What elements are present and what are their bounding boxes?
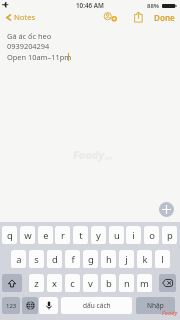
staticText: p — [167, 229, 173, 242]
staticText: y — [96, 229, 101, 242]
button[interactable]: w — [20, 226, 35, 244]
staticText: r — [61, 229, 65, 242]
button[interactable]: t — [73, 226, 88, 244]
staticText: t — [79, 229, 83, 242]
button[interactable]: g — [83, 250, 98, 268]
staticText: w — [24, 229, 32, 242]
staticText: g — [88, 253, 94, 266]
button[interactable]: x — [47, 274, 62, 292]
button[interactable]: m — [137, 274, 152, 292]
button[interactable]: Notes — [0, 9, 40, 26]
staticText: 10:46 AM — [76, 1, 104, 10]
staticText: l — [161, 253, 164, 266]
button[interactable]: o — [144, 226, 159, 244]
staticText: j — [125, 253, 128, 266]
staticText: u — [114, 229, 120, 242]
staticText: Open 10am–11pm — [7, 52, 72, 62]
button[interactable]: Add people — [102, 10, 119, 24]
button[interactable]: j — [119, 250, 134, 268]
button[interactable]: h — [101, 250, 116, 268]
button[interactable]: Add attachment — [159, 202, 174, 217]
button[interactable]: b — [101, 274, 116, 292]
button[interactable]: v — [83, 274, 98, 292]
staticText: n — [124, 277, 130, 290]
staticText: o — [149, 229, 155, 242]
button[interactable]: u — [109, 226, 124, 244]
staticText: Foody — [162, 309, 178, 316]
button[interactable]: l — [155, 250, 170, 268]
button[interactable]: d — [47, 250, 62, 268]
staticText: s — [34, 253, 39, 266]
button[interactable]: Shift — [2, 274, 22, 292]
button[interactable]: Delete — [159, 274, 176, 292]
staticText: k — [142, 253, 148, 266]
button[interactable]: z — [29, 274, 44, 292]
button[interactable]: p — [162, 226, 177, 244]
button[interactable]: e — [38, 226, 53, 244]
staticText: m — [140, 277, 149, 290]
button[interactable]: Change keyboard — [22, 297, 38, 314]
button[interactable]: s — [29, 250, 44, 268]
staticText: z — [34, 277, 39, 290]
staticText: dấu cách — [83, 301, 111, 310]
button[interactable]: n — [119, 274, 134, 292]
button[interactable]: c — [65, 274, 80, 292]
button[interactable]: q — [2, 226, 17, 244]
staticText: c — [70, 277, 75, 290]
staticText: f — [71, 253, 75, 266]
staticText: i — [132, 229, 135, 242]
staticText: q — [7, 229, 13, 242]
button[interactable]: r — [55, 226, 70, 244]
button[interactable]: Nhập — [136, 297, 175, 314]
staticText: h — [106, 253, 112, 266]
staticText: Notes — [14, 12, 36, 22]
button[interactable]: Dictate — [39, 297, 58, 314]
button[interactable]: i — [126, 226, 141, 244]
staticText: a — [16, 253, 22, 266]
staticText: Gà ác ốc heo — [7, 31, 52, 41]
staticText: Nhập — [147, 301, 164, 310]
staticText: Foody — [73, 147, 104, 162]
staticText: e — [43, 229, 49, 242]
button[interactable]: f — [65, 250, 80, 268]
button[interactable]: k — [137, 250, 152, 268]
staticText: 0939204294 — [7, 41, 50, 51]
button[interactable]: y — [91, 226, 106, 244]
staticText: x — [52, 277, 57, 290]
staticText: 123 — [6, 302, 17, 310]
button[interactable]: Done — [151, 10, 178, 25]
staticText: v — [88, 277, 93, 290]
button[interactable]: 123 — [2, 297, 20, 314]
staticText: Done — [154, 12, 175, 23]
staticText: d — [52, 253, 58, 266]
staticText: b — [106, 277, 112, 290]
button[interactable]: dấu cách — [61, 297, 132, 314]
staticText: 88% — [147, 2, 160, 10]
button[interactable]: a — [11, 250, 26, 268]
staticText: .vn — [104, 154, 113, 161]
button[interactable]: Share — [132, 10, 145, 24]
